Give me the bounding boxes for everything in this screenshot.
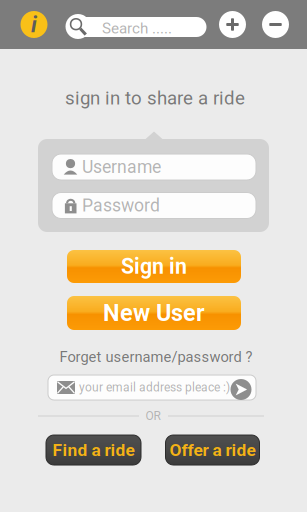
staticText: Username [82,157,161,177]
staticText: Search ..... [102,19,172,37]
button[interactable]: New User [67,296,241,330]
button[interactable]: Username [52,154,256,180]
button[interactable]: Search ..... [61,14,202,39]
staticText: OR [145,409,160,423]
staticText: Password [82,195,160,216]
staticText: i [31,11,37,38]
button[interactable]: Password [52,192,256,218]
button[interactable]: Find a ride [46,435,141,465]
staticText: Forget username/password ? [59,348,252,366]
button[interactable]: Offer a ride [165,435,259,465]
button[interactable]: Send [230,379,251,400]
staticText: your email address pleace :) [79,380,230,395]
staticText: New User [103,299,205,327]
staticText: Find a ride [52,440,134,460]
button[interactable]: Remove [262,11,289,38]
button[interactable]: Info [20,11,47,38]
staticText: Offer a ride [169,440,255,460]
button[interactable]: Sign in [67,250,241,283]
staticText: sign in to share a ride [65,87,245,109]
button[interactable]: Add [219,11,246,38]
staticText: Sign in [121,254,187,279]
